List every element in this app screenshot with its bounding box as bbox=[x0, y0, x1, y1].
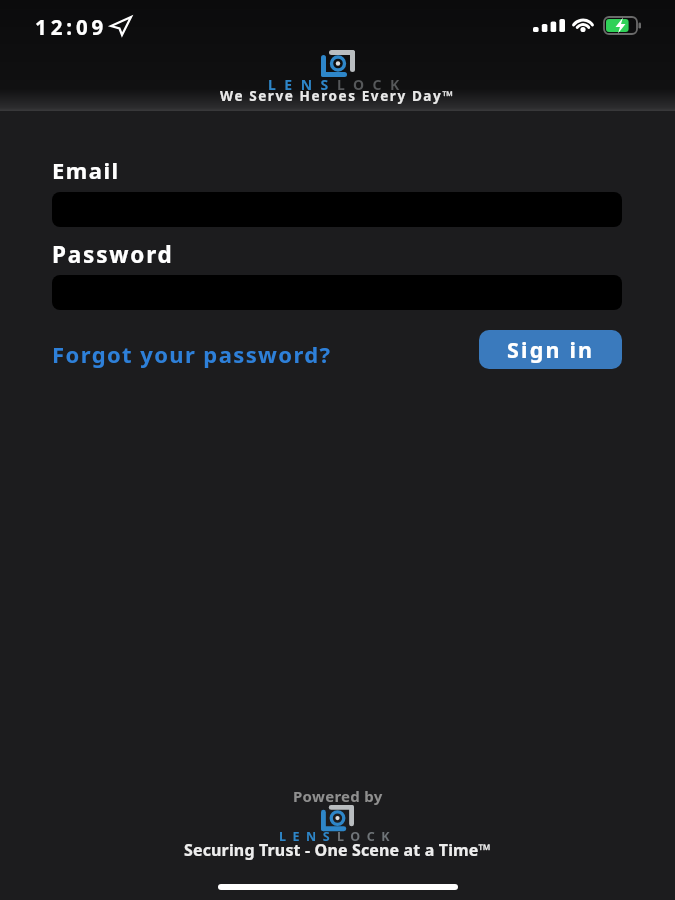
staticText: LENS bbox=[268, 75, 337, 94]
staticText: Sign in bbox=[507, 335, 595, 364]
staticText: Securing Trust - One Scene at a Time™ bbox=[184, 839, 492, 861]
staticText: We Serve Heroes Every Day™ bbox=[220, 87, 455, 105]
staticText: Email bbox=[52, 155, 120, 185]
staticText: 12:09 bbox=[35, 13, 108, 41]
staticText: LOCK bbox=[337, 75, 408, 94]
button[interactable]: Sign in bbox=[479, 330, 622, 369]
button[interactable]: Forgot your password? bbox=[52, 339, 332, 369]
staticText: Powered by bbox=[293, 786, 383, 806]
staticText: LENS bbox=[279, 828, 337, 845]
staticText: LOCK bbox=[337, 828, 396, 845]
staticText: Password bbox=[52, 239, 174, 270]
